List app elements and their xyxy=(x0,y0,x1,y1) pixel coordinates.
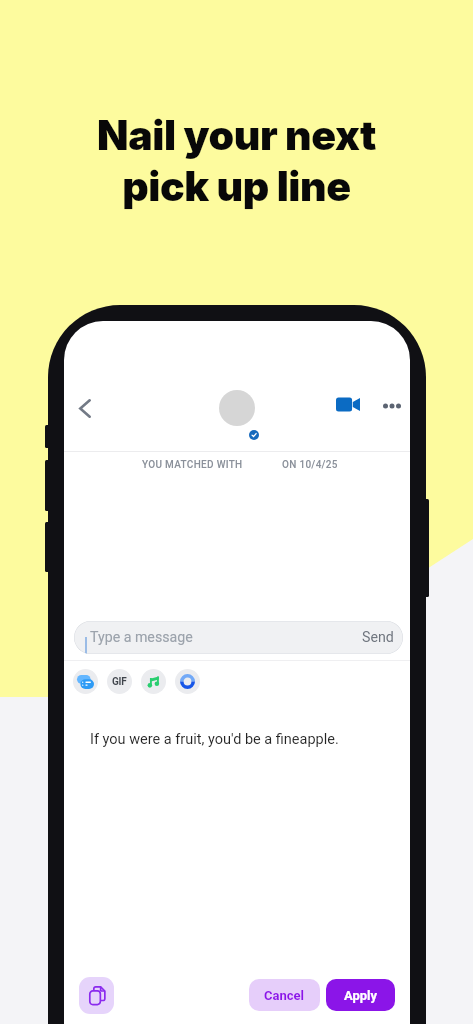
button[interactable]: Back xyxy=(69,392,101,424)
staticText: YOU MATCHED WITH xyxy=(142,459,243,471)
staticText: GIF xyxy=(112,676,127,688)
button[interactable]: Attachment xyxy=(175,669,200,694)
staticText: Nail your next pick up line xyxy=(97,110,376,211)
button[interactable]: Attachment xyxy=(73,669,98,694)
button[interactable]: More options xyxy=(376,390,408,422)
button[interactable]: Apply xyxy=(326,979,395,1011)
staticText: Type a message xyxy=(90,629,193,646)
button[interactable]: Attachment xyxy=(107,669,132,694)
button[interactable]: Cancel xyxy=(249,979,320,1011)
staticText: Cancel xyxy=(264,988,305,1003)
staticText: Apply xyxy=(344,988,378,1003)
staticText: Send xyxy=(362,629,394,646)
button[interactable]: Attachment xyxy=(141,669,166,694)
button[interactable]: Type a message xyxy=(74,621,403,654)
staticText: If you were a fruit, you'd be a fineappl… xyxy=(90,731,339,748)
button[interactable]: Video call xyxy=(332,388,364,420)
staticText: ON 10/4/25 xyxy=(282,459,338,471)
button[interactable]: Copy xyxy=(79,977,114,1014)
